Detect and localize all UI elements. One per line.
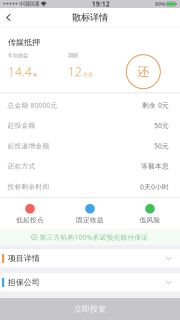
staticText: 散标详情 xyxy=(72,12,108,23)
staticText: 年化收益 xyxy=(8,52,28,59)
staticText: 还 xyxy=(137,64,149,79)
staticText: 50元 xyxy=(154,142,169,150)
staticText: 89% xyxy=(155,0,165,8)
button[interactable]: 立即投资 xyxy=(0,298,180,320)
staticText: 固定收益 xyxy=(76,216,104,224)
staticText: 低起投点 xyxy=(16,216,44,224)
button[interactable]: 还款中 xyxy=(122,51,164,93)
button[interactable]: 项目详情 xyxy=(0,249,180,268)
staticText: 14.4 xyxy=(8,64,32,80)
staticText: ••••• xyxy=(3,0,18,8)
staticText: % xyxy=(33,71,37,78)
staticText: 中国联通 xyxy=(19,1,39,7)
staticText: 投标剩余时间 xyxy=(7,183,49,191)
button[interactable]: 返回 xyxy=(0,8,17,27)
staticText: 起投递增金额 xyxy=(7,142,49,150)
staticText: 项目详情 xyxy=(8,253,40,263)
staticText: 个月 xyxy=(83,72,93,78)
staticText: 12 xyxy=(68,64,82,80)
staticText: 期限 xyxy=(68,52,78,59)
staticText: 低风险 xyxy=(139,216,160,224)
staticText: 剩余 0元 xyxy=(142,101,169,110)
staticText: 50元 xyxy=(154,121,169,130)
staticText: 立即投资 xyxy=(74,304,106,314)
staticText: 19:12 xyxy=(92,0,110,8)
button[interactable]: 担保公司 xyxy=(0,273,180,292)
staticText: 还款方式 xyxy=(7,162,35,170)
staticText: 总金额 80000元 xyxy=(7,101,57,110)
staticText: 起投金额 xyxy=(7,121,35,130)
staticText: 第三方机构100%承诺预先赔付保证 xyxy=(39,233,148,242)
staticText: 传媒抵押 xyxy=(8,37,40,47)
staticText: 0天0小时 xyxy=(140,182,169,191)
staticText: 等额本息 xyxy=(141,162,169,170)
staticText: 担保公司 xyxy=(8,277,40,287)
